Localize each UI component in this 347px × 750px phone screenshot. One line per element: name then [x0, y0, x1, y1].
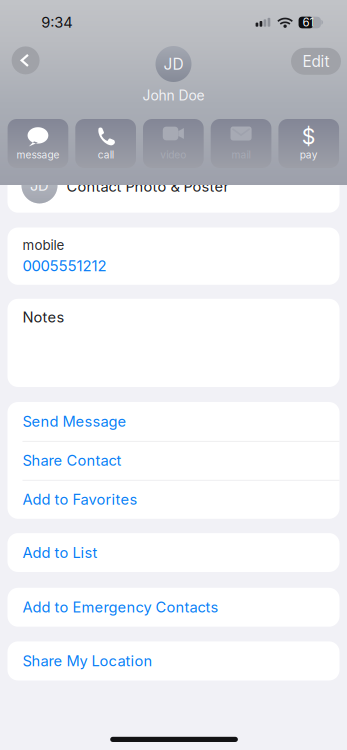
button[interactable]: $ [278, 119, 339, 168]
staticText: video [160, 149, 186, 161]
staticText: John Doe [142, 87, 204, 104]
button[interactable]: Notes [7, 299, 339, 387]
staticText: Send Message [22, 413, 126, 430]
staticText: call [98, 149, 114, 161]
button[interactable]: mail [211, 119, 271, 168]
button[interactable]: video [143, 119, 204, 168]
button[interactable]: Send Message [7, 402, 339, 441]
button[interactable]: Add to List [7, 533, 339, 572]
staticText: mail [232, 149, 251, 161]
button[interactable]: JD [7, 157, 339, 213]
staticText: Share My Location [22, 652, 152, 670]
staticText: $ [302, 124, 316, 149]
staticText: 0005551212 [22, 257, 106, 275]
staticText: mobile [22, 237, 64, 253]
button[interactable]: Share My Location [7, 641, 339, 680]
staticText: 61 [303, 15, 315, 29]
staticText: Notes [22, 308, 64, 326]
staticText: pay [300, 149, 318, 161]
button[interactable]: Add to Emergency Contacts [7, 588, 339, 627]
button[interactable]: Back [12, 46, 40, 74]
button[interactable]: Share Contact [7, 441, 339, 480]
staticText: Add to Favorites [22, 490, 137, 508]
staticText: 9:34 [41, 13, 72, 31]
staticText: JD [163, 55, 183, 73]
button[interactable]: Edit [291, 48, 341, 75]
button[interactable]: 0005551212 [22, 259, 106, 273]
staticText: Edit [302, 52, 329, 71]
button[interactable]: call [75, 119, 136, 168]
staticText: Add to Emergency Contacts [22, 598, 218, 616]
staticText: Add to List [22, 544, 97, 561]
button[interactable]: message [8, 119, 68, 168]
button[interactable]: Add to Favorites [7, 480, 339, 519]
staticText: Contact Photo & Poster [66, 178, 229, 195]
staticText: message [16, 149, 59, 161]
staticText: JD [30, 176, 49, 194]
staticText: Share Contact [22, 451, 121, 469]
